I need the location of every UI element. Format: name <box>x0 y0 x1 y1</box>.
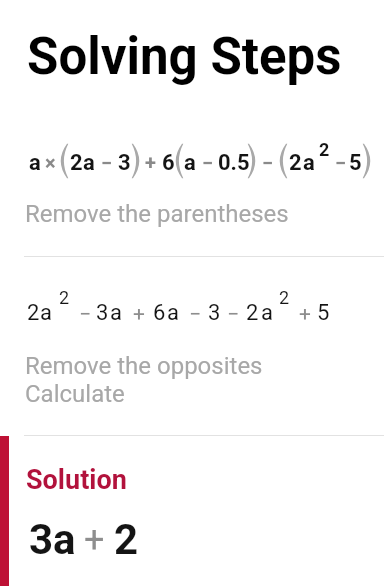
staticText: 2 <box>279 287 290 308</box>
staticText: 5 <box>349 150 362 176</box>
staticText: Solving Steps <box>27 27 342 87</box>
staticText: 3 <box>29 515 54 564</box>
staticText: 3 <box>96 300 109 326</box>
staticText: 2 <box>289 150 302 176</box>
staticText: 2 <box>59 287 70 308</box>
staticText: 2 <box>319 139 330 160</box>
staticText: 2 <box>27 300 40 326</box>
staticText: a <box>40 300 52 326</box>
staticText: 3 <box>208 300 221 326</box>
staticText: 0.5 <box>218 150 250 176</box>
button[interactable]: Step 2: remove the opposites and calcula… <box>0 278 384 435</box>
staticText: a <box>261 300 273 326</box>
staticText: Calculate <box>25 380 125 408</box>
button[interactable]: Solution 3a + 2 <box>0 436 384 586</box>
staticText: a <box>53 515 76 564</box>
staticText: − <box>79 302 92 327</box>
staticText: × <box>45 151 56 174</box>
staticText: 3 <box>118 150 131 176</box>
staticText: − <box>335 151 347 174</box>
staticText: a <box>303 150 315 176</box>
staticText: Remove the parentheses <box>25 200 289 228</box>
staticText: + <box>299 302 311 327</box>
staticText: + <box>84 519 105 561</box>
staticText: a <box>29 150 41 176</box>
staticText: − <box>262 151 274 174</box>
staticText: a <box>110 300 122 326</box>
staticText: Remove the opposites <box>25 352 263 380</box>
staticText: a <box>167 300 179 326</box>
staticText: + <box>145 151 156 174</box>
staticText: − <box>189 302 202 327</box>
staticText: 2 <box>114 515 139 564</box>
staticText: Solution <box>26 464 127 496</box>
staticText: − <box>101 151 113 174</box>
staticText: − <box>227 302 240 327</box>
staticText: a <box>184 150 196 176</box>
staticText: 2 <box>70 150 83 176</box>
staticText: 5 <box>317 300 330 326</box>
staticText: − <box>202 151 214 174</box>
staticText: a <box>83 150 95 176</box>
button[interactable]: Step 1: remove the parentheses <box>0 128 384 256</box>
staticText: + <box>133 302 145 327</box>
staticText: 6 <box>153 300 166 326</box>
staticText: 6 <box>162 150 175 176</box>
staticText: 2 <box>246 300 259 326</box>
